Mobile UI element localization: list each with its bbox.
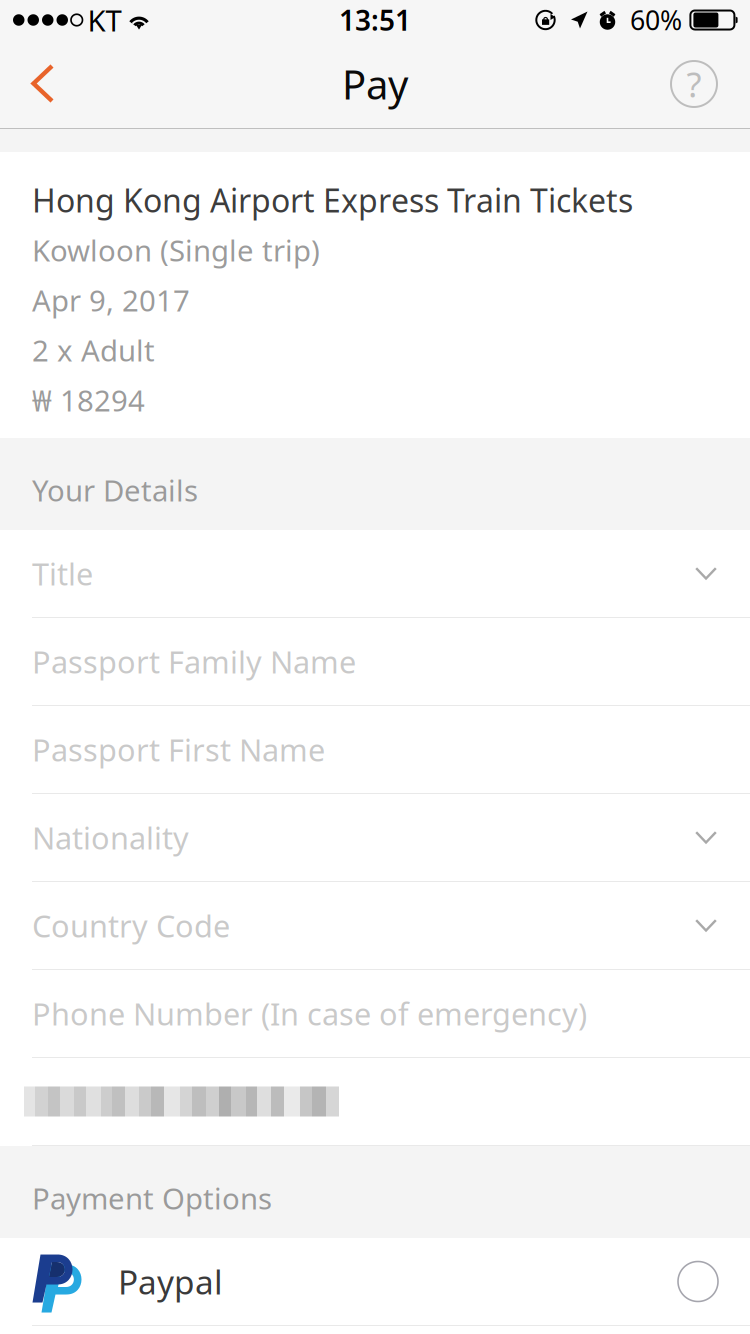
staticText: Passport Family Name (32, 641, 356, 682)
button[interactable]: Help (647, 42, 750, 126)
button[interactable]: Paypal (0, 1238, 750, 1326)
staticText: Paypal (118, 1259, 223, 1304)
staticText: ? (686, 61, 701, 107)
staticText: Pay (342, 57, 408, 110)
staticText: Your Details (32, 470, 198, 509)
staticText: Kowloon (Single trip) (32, 230, 320, 269)
button[interactable]: Nationality (0, 794, 750, 882)
staticText: Passport First Name (32, 729, 325, 770)
staticText: ₩ 18294 (32, 380, 145, 419)
staticText: KT (87, 0, 121, 39)
staticText: 60% (630, 2, 682, 38)
button[interactable]: Phone Number (In case of emergency) (0, 970, 750, 1058)
staticText: 2 x Adult (32, 330, 155, 369)
button[interactable]: Title (0, 530, 750, 618)
staticText: Apr 9, 2017 (32, 280, 190, 319)
staticText: Nationality (32, 817, 189, 858)
button[interactable]: Country Code (0, 882, 750, 970)
staticText: Phone Number (In case of emergency) (32, 993, 587, 1034)
staticText: 13:51 (339, 1, 411, 39)
staticText: Title (32, 553, 93, 594)
button[interactable]: Passport First Name (0, 706, 750, 794)
button[interactable]: Back (0, 42, 81, 126)
staticText: Hong Kong Airport Express Train Tickets (32, 179, 633, 221)
staticText: Country Code (32, 905, 230, 946)
staticText: Payment Options (32, 1178, 272, 1217)
button[interactable]: Passport Family Name (0, 618, 750, 706)
